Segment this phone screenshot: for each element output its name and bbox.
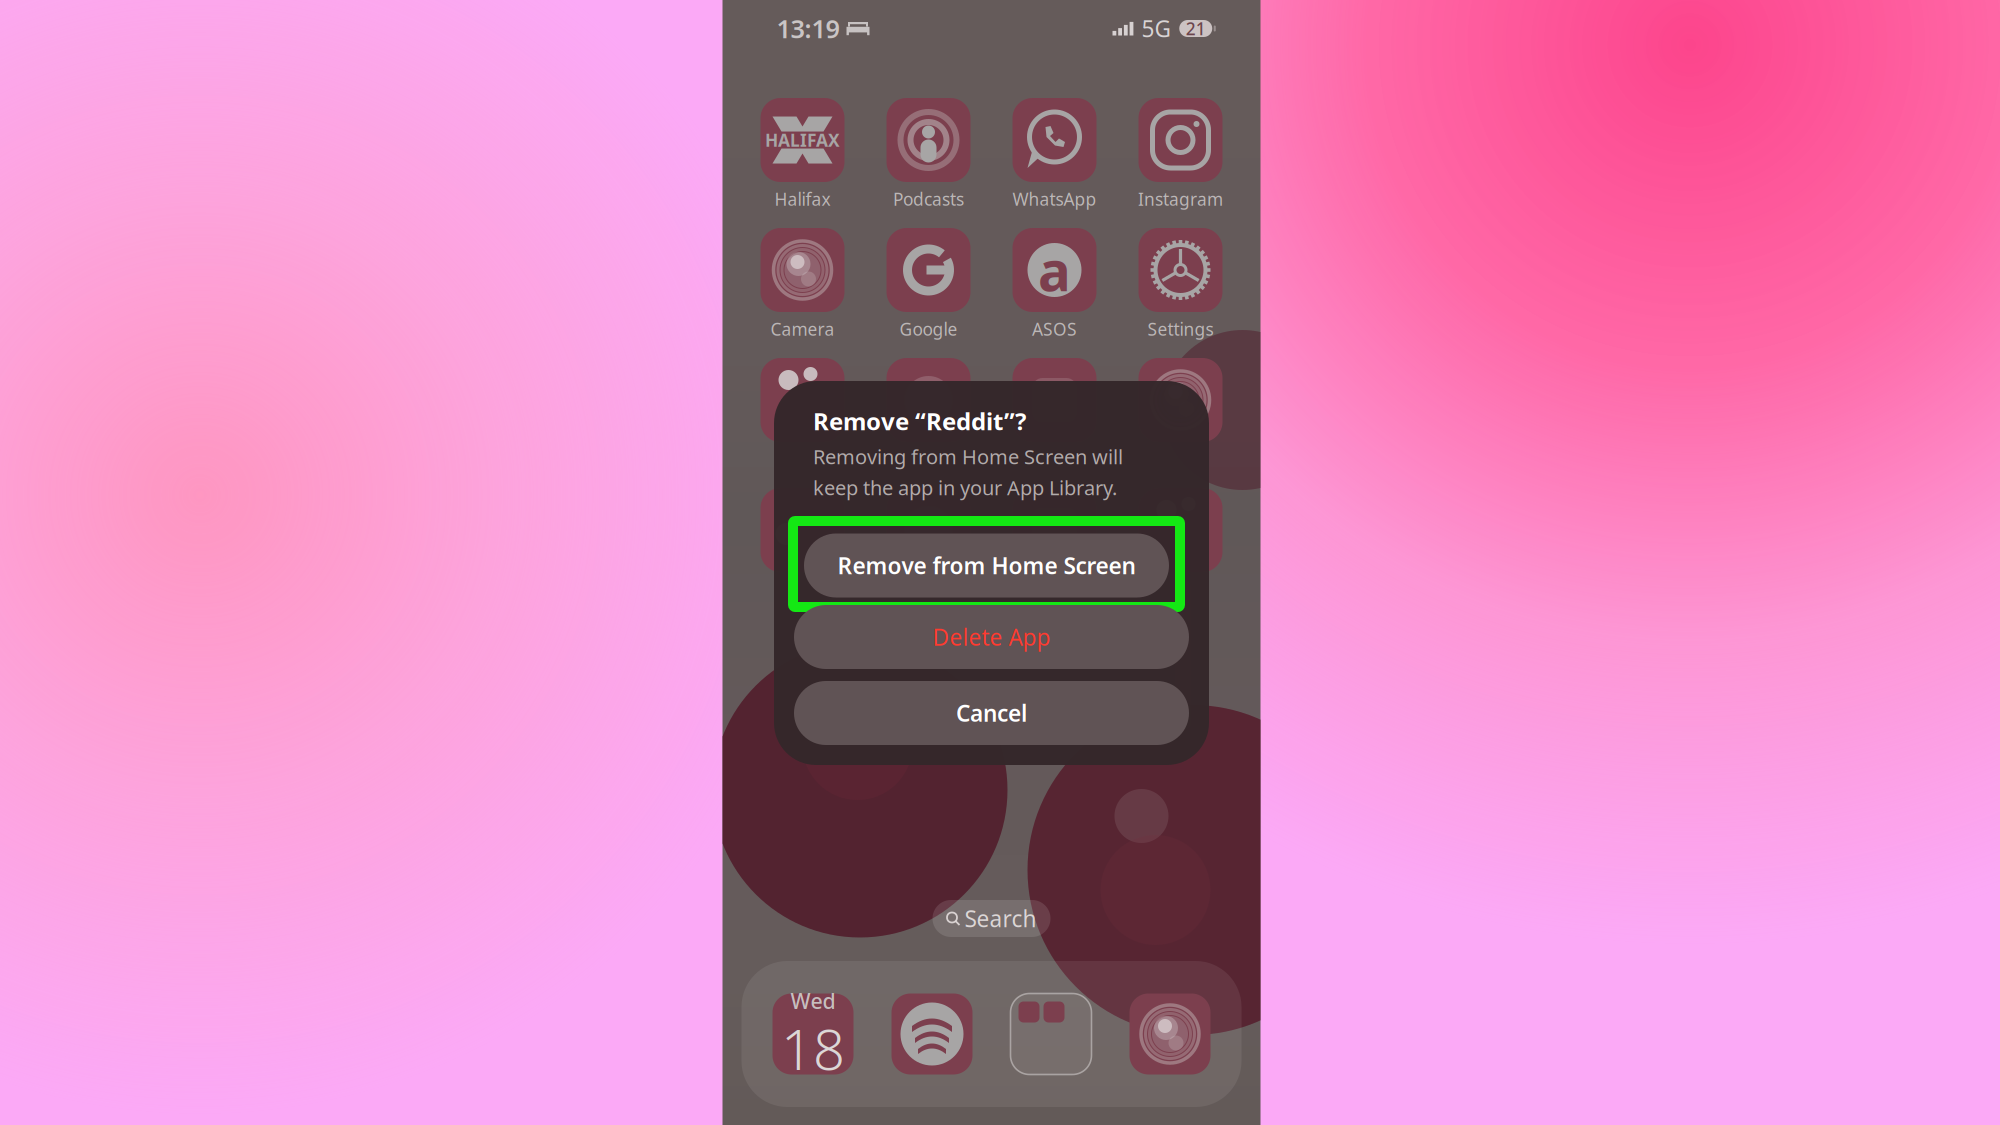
staticText: Removing from Home Screen will: [813, 443, 1123, 470]
staticText: 13:19: [776, 12, 839, 45]
button[interactable]: [1124, 358, 1237, 472]
staticText: Google: [899, 317, 957, 340]
staticText: Instagram: [1138, 187, 1223, 210]
staticText: Cancel: [956, 698, 1027, 728]
staticText: keep the app in your App Library.: [813, 474, 1117, 501]
button[interactable]: [1124, 488, 1237, 602]
button[interactable]: [998, 488, 1111, 602]
button[interactable]: HALIFAX: [746, 98, 859, 212]
button[interactable]: Spotify: [891, 993, 972, 1074]
button[interactable]: [872, 358, 985, 472]
staticText: Halifax: [774, 187, 830, 210]
staticText: Remove “Reddit”?: [813, 405, 1026, 437]
staticText: 18: [781, 1011, 845, 1085]
staticText: a: [1038, 234, 1071, 306]
button[interactable]: [998, 358, 1111, 472]
button[interactable]: Camera: [746, 228, 859, 342]
staticText: Camera: [770, 317, 834, 340]
button[interactable]: Camera: [1129, 993, 1210, 1074]
button[interactable]: Settings: [1124, 228, 1237, 342]
button[interactable]: a: [998, 228, 1111, 342]
staticText: ASOS: [1032, 317, 1077, 340]
button[interactable]: [746, 488, 859, 602]
button[interactable]: Search: [932, 900, 1050, 937]
staticText: Podcasts: [893, 187, 964, 210]
button[interactable]: Cancel: [794, 681, 1189, 745]
button[interactable]: WhatsApp: [998, 98, 1111, 212]
staticText: 21: [1186, 17, 1206, 40]
staticText: WhatsApp: [1012, 187, 1096, 210]
button[interactable]: Calendar: [772, 993, 853, 1074]
staticText: Remove from Home Screen: [837, 550, 1135, 580]
staticText: Wed: [790, 987, 835, 1015]
staticText: Delete App: [932, 622, 1050, 652]
button[interactable]: [872, 488, 985, 602]
button[interactable]: Delete App: [794, 605, 1189, 669]
button[interactable]: [746, 358, 859, 472]
button[interactable]: Podcasts: [872, 98, 985, 212]
staticText: 5G: [1141, 13, 1171, 43]
button[interactable]: Google: [872, 228, 985, 342]
staticText: Settings: [1147, 317, 1213, 340]
staticText: HALIFAX: [765, 128, 840, 151]
button[interactable]: Remove from Home Screen: [804, 533, 1169, 597]
button[interactable]: App folder: [1010, 993, 1091, 1074]
staticText: Search: [964, 903, 1036, 933]
button[interactable]: Instagram: [1124, 98, 1237, 212]
